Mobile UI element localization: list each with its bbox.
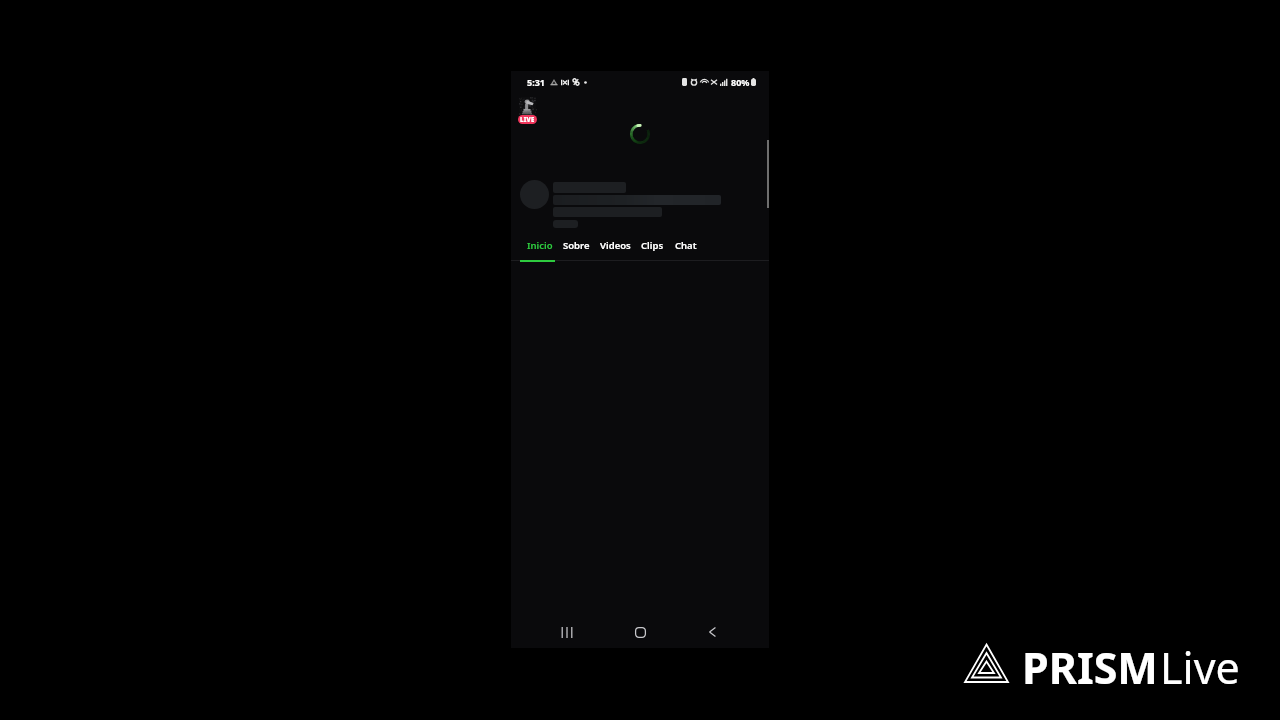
button[interactable]: Sobre [558,234,594,256]
button[interactable]: Recent apps [555,620,579,644]
button[interactable]: Clips [636,234,669,256]
button[interactable]: Chat [670,234,701,256]
button[interactable]: Back [700,620,724,644]
staticText: Live [1160,638,1240,697]
staticText: LIVE [520,116,535,124]
staticText: PRISM [1022,638,1158,697]
staticText: Inicio [527,239,553,252]
staticText: Chat [675,239,697,252]
button[interactable]: LIVE [518,115,537,124]
staticText: 5:31 [527,76,545,88]
button[interactable]: Inicio [522,234,558,256]
staticText: 80% [731,76,750,88]
button[interactable]: Channel avatar [519,97,536,115]
staticText: Clips [641,239,664,252]
staticText: Sobre [563,239,590,252]
staticText: Videos [600,239,631,252]
button[interactable]: Videos [595,234,636,256]
button[interactable]: Home [628,620,652,644]
